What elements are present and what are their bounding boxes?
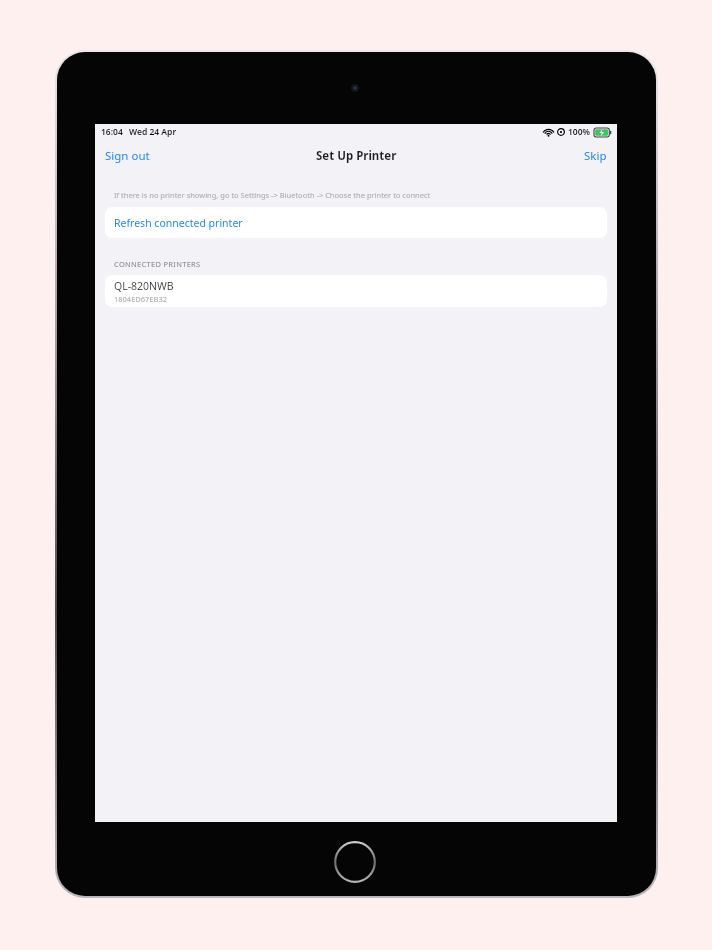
staticText: 16:04 [101,126,123,138]
staticText: CONNECTED PRINTERS [114,259,201,269]
button[interactable]: Skip [574,142,617,170]
staticText: Sign out [105,148,150,164]
staticText: 100% [568,126,591,138]
staticText: If there is no printer showing, go to Se… [114,190,431,200]
staticText: Wed 24 Apr [129,126,177,138]
staticText: Skip [584,148,607,164]
staticText: Refresh connected printer [114,216,243,230]
button[interactable]: QL-820NWB [105,275,607,307]
staticText: Set Up Printer [316,148,397,164]
button[interactable]: Sign out [95,142,160,170]
button[interactable]: Refresh connected printer [105,207,607,238]
staticText: 1804ED67EB32 [114,294,168,304]
staticText: QL-820NWB [114,279,174,293]
